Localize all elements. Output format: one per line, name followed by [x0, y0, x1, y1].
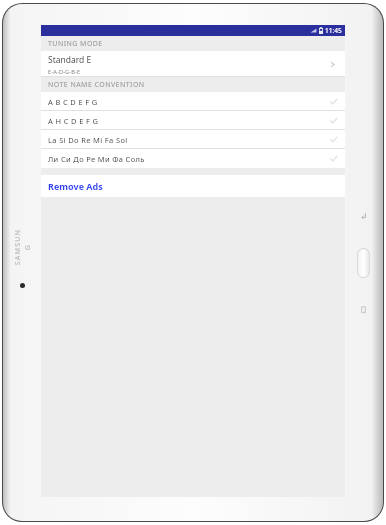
button[interactable]: Ли Си До Ре Ми Фа Соль [41, 149, 345, 168]
staticText: 11:45 [325, 26, 342, 35]
button[interactable]: Remove Ads [41, 175, 345, 197]
other: Back [358, 210, 370, 222]
staticText: SAMSUNG [12, 227, 32, 266]
button[interactable]: Standard E [41, 51, 345, 77]
staticText: A B C D E F G [48, 97, 98, 107]
button[interactable]: A B C D E F G [41, 92, 345, 111]
staticText: Standard E [48, 54, 92, 66]
button[interactable]: La Si Do Re Mi Fa Sol [41, 130, 345, 149]
staticText: La Si Do Re Mi Fa Sol [48, 135, 128, 145]
staticText: A H C D E F G [48, 116, 99, 126]
staticText: NOTE NAME CONVENTION [48, 80, 145, 90]
staticText: Remove Ads [48, 180, 103, 192]
button[interactable]: Home [358, 249, 369, 277]
staticText: TUNING MODE [48, 39, 103, 49]
staticText: E-A-D-G-B-E [48, 68, 81, 75]
other: Recent apps [358, 304, 369, 315]
button[interactable]: A H C D E F G [41, 111, 345, 130]
staticText: Ли Си До Ре Ми Фа Соль [48, 154, 145, 164]
